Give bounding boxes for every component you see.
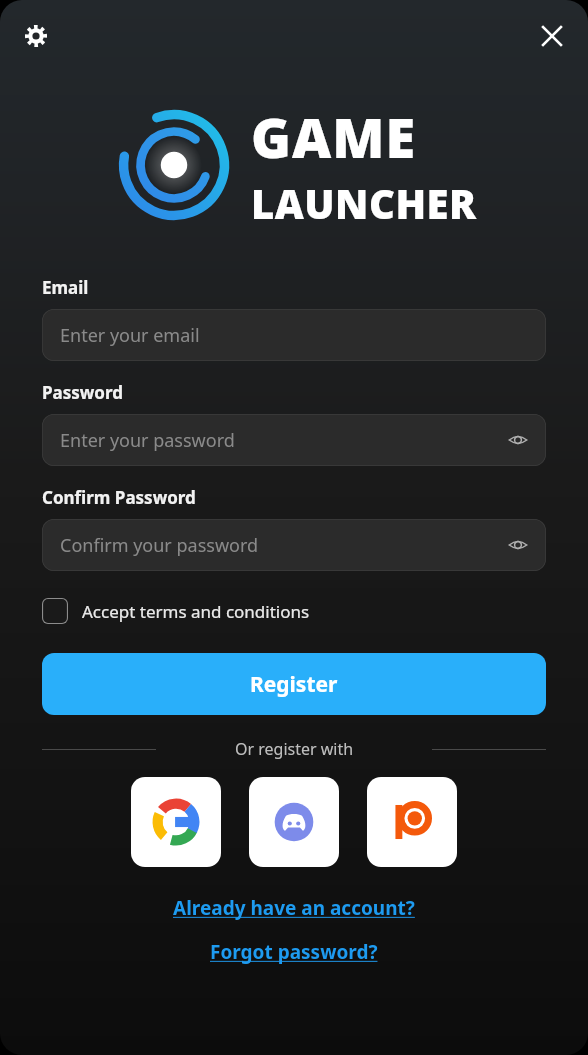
button[interactable]: Enter your password bbox=[42, 414, 546, 466]
button[interactable]: Toggle password visibility bbox=[500, 527, 536, 563]
staticText: Password bbox=[42, 381, 123, 404]
button[interactable]: Accept terms and conditions bbox=[42, 596, 310, 626]
button[interactable]: Sign up with Patreon bbox=[367, 777, 457, 867]
button[interactable]: Sign up with Google bbox=[131, 777, 221, 867]
button[interactable]: Close bbox=[530, 14, 574, 58]
button[interactable]: Register bbox=[42, 653, 546, 715]
staticText: Accept terms and conditions bbox=[82, 600, 310, 623]
staticText: Or register with bbox=[235, 738, 354, 760]
button[interactable]: Enter your email bbox=[42, 309, 546, 361]
button[interactable]: Forgot password? bbox=[204, 937, 384, 967]
staticText: LAUNCHER bbox=[251, 176, 477, 230]
staticText: Already have an account? bbox=[173, 895, 415, 921]
staticText: Forgot password? bbox=[210, 939, 378, 965]
staticText: Email bbox=[42, 276, 89, 299]
button[interactable]: Settings bbox=[14, 14, 58, 58]
button[interactable]: Sign up with Discord bbox=[249, 777, 339, 867]
staticText: Confirm Password bbox=[42, 486, 196, 509]
button[interactable]: Toggle password visibility bbox=[500, 422, 536, 458]
button[interactable]: Already have an account? bbox=[167, 893, 421, 923]
staticText: GAME bbox=[251, 100, 417, 174]
staticText: Confirm your password bbox=[60, 533, 259, 558]
staticText: Register bbox=[250, 670, 338, 699]
staticText: Enter your password bbox=[60, 428, 235, 453]
button[interactable]: Confirm your password bbox=[42, 519, 546, 571]
staticText: Enter your email bbox=[60, 323, 200, 348]
